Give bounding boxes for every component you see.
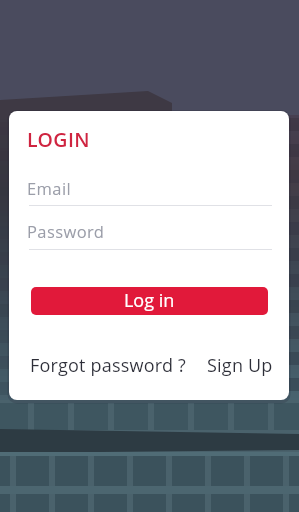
staticText: Password [27, 220, 105, 242]
button[interactable]: Sign Up [207, 353, 273, 378]
button[interactable]: Email [27, 177, 272, 207]
staticText: LOGIN [27, 126, 90, 153]
button[interactable]: Log in [31, 287, 268, 315]
button[interactable]: Forgot password ? [30, 353, 187, 378]
staticText: Sign Up [207, 353, 273, 378]
staticText: Forgot password ? [30, 353, 187, 378]
staticText: Log in [124, 288, 175, 313]
button[interactable]: Password [27, 220, 272, 250]
staticText: Email [27, 177, 72, 199]
